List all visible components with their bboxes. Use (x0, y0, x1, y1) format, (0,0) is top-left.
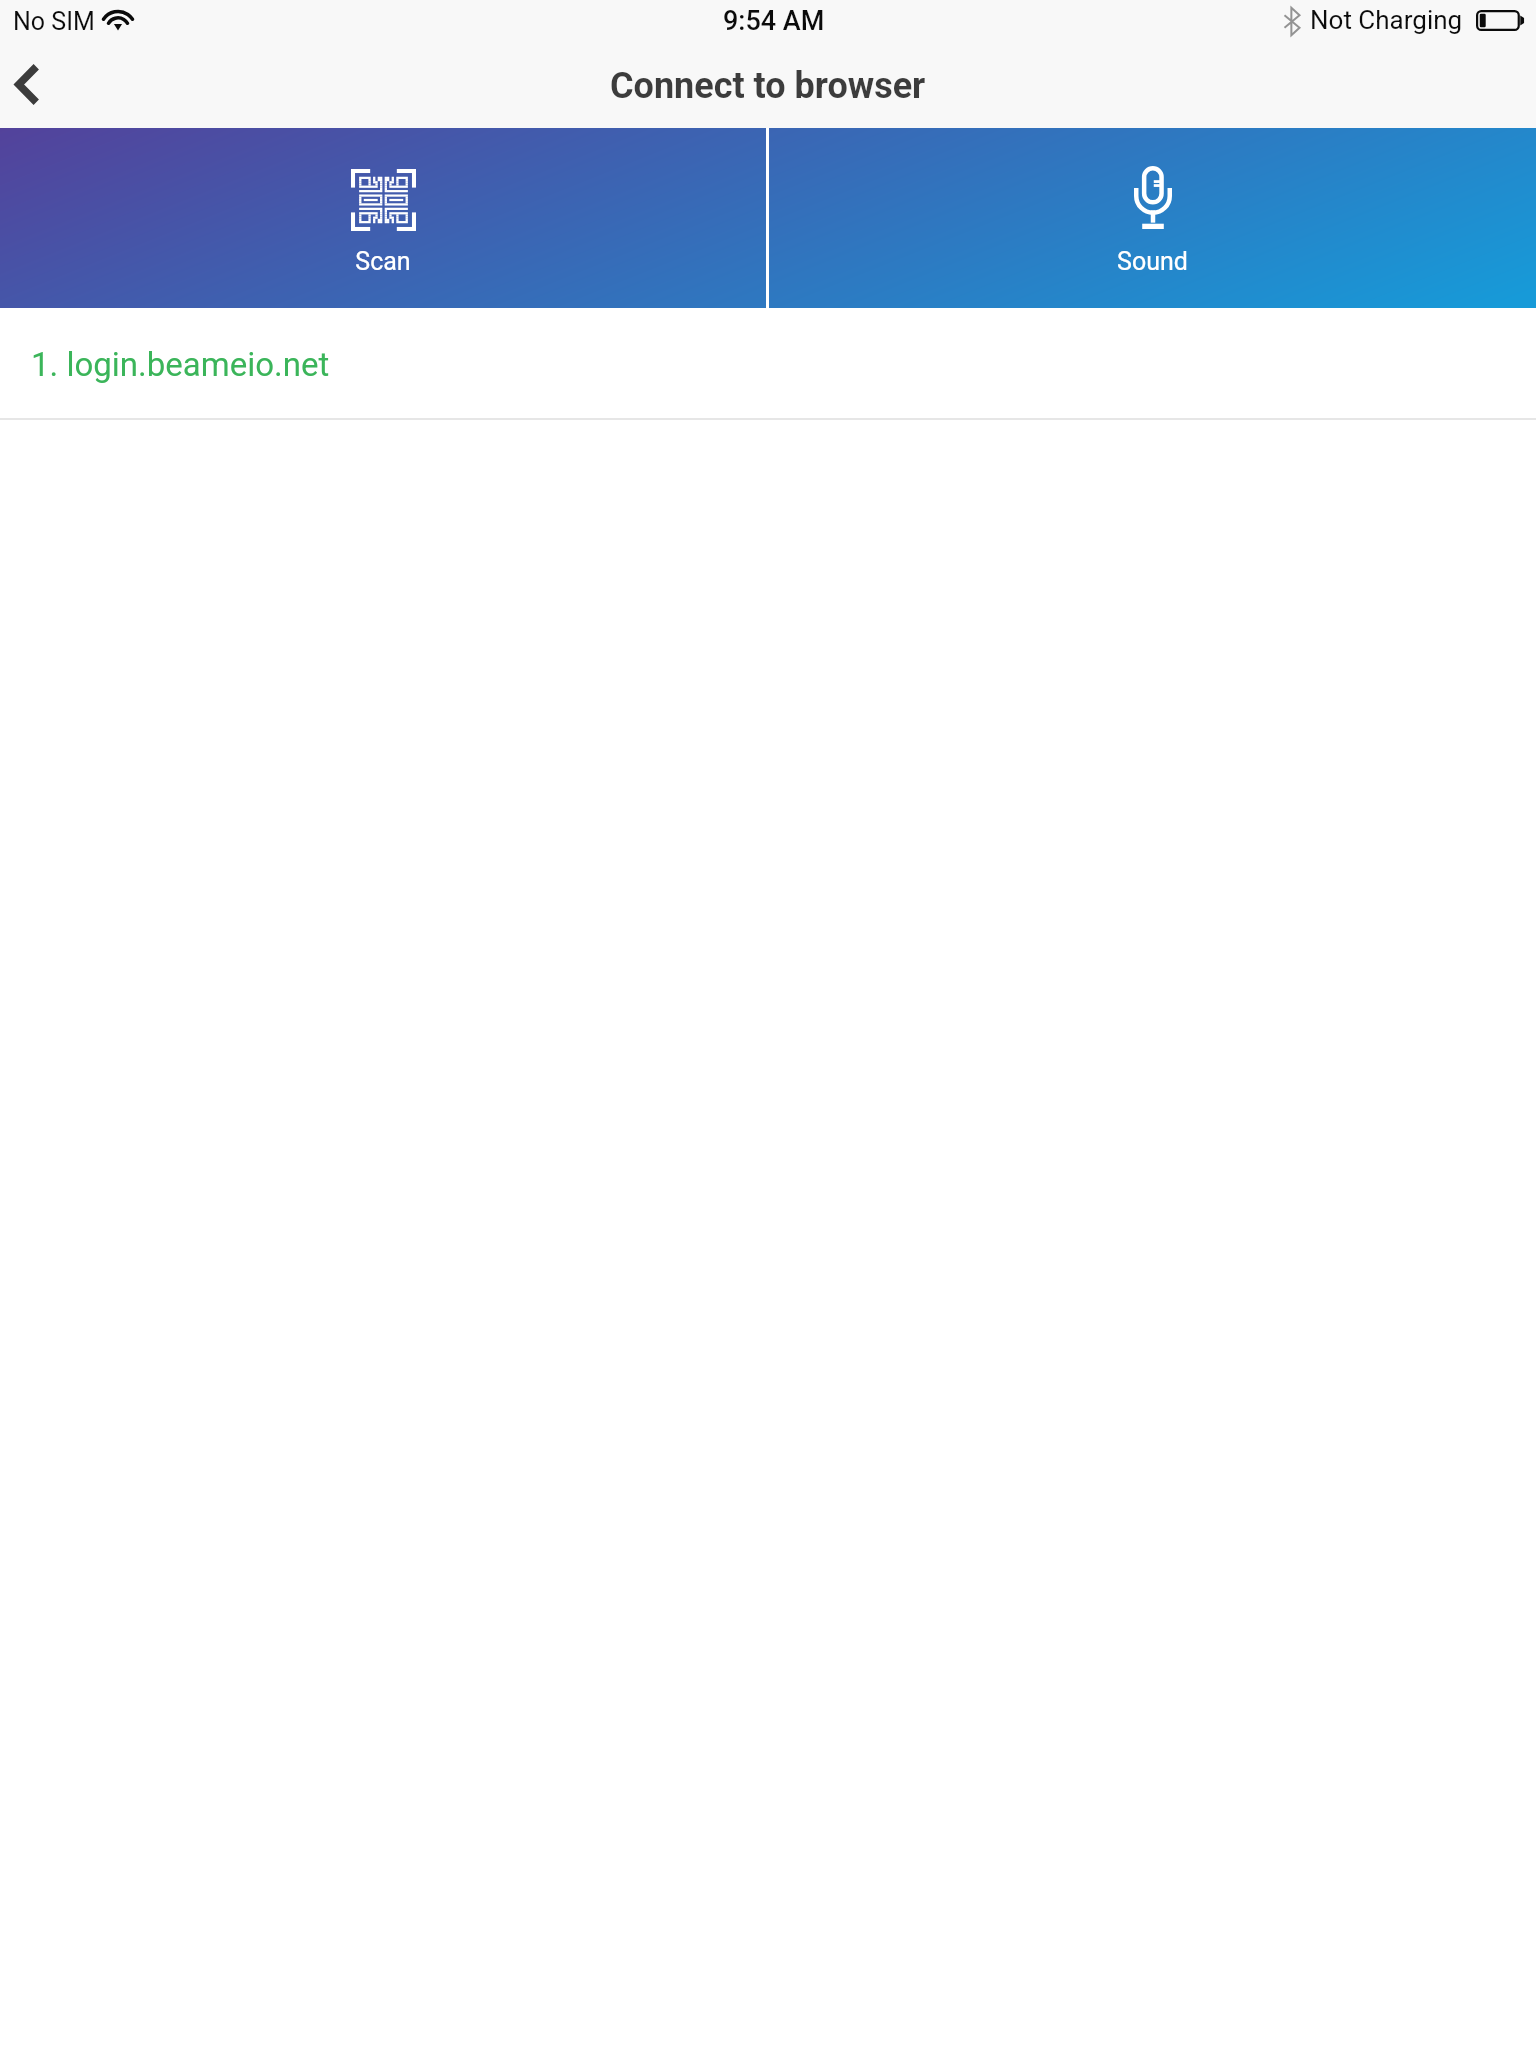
staticText: Connect to browser (610, 65, 926, 107)
staticText: 9:54 AM (723, 5, 825, 37)
button[interactable]: 1. login.beameio.net (0, 308, 1536, 418)
staticText: Scan (355, 247, 411, 276)
staticText: Not Charging (1310, 5, 1463, 35)
button[interactable]: Scan (0, 128, 766, 308)
staticText: 1. login.beameio.net (31, 345, 330, 384)
staticText: Sound (1117, 247, 1188, 276)
button[interactable]: Sound (769, 128, 1536, 308)
button[interactable]: Back (0, 41, 70, 128)
staticText: No SIM (13, 7, 95, 36)
